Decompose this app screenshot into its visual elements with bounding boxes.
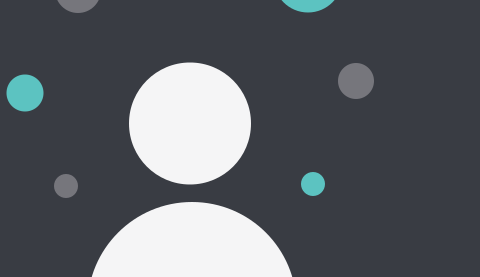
button[interactable]: Profile photo: [0, 0, 480, 277]
